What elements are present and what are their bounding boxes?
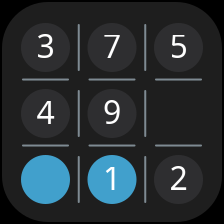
- staticText: 3: [36, 24, 54, 67]
- staticText: 9: [103, 90, 121, 133]
- button[interactable]: 2: [145, 146, 211, 212]
- button[interactable]: Entered digit: [12, 146, 78, 212]
- button[interactable]: 9: [79, 80, 145, 146]
- staticText: 7: [103, 24, 121, 67]
- button[interactable]: 4: [12, 80, 78, 146]
- staticText: 2: [169, 156, 187, 199]
- staticText: 1: [103, 156, 121, 199]
- button[interactable]: 3: [12, 14, 78, 80]
- staticText: 5: [169, 24, 187, 67]
- button[interactable]: 5: [145, 14, 211, 80]
- staticText: 4: [36, 90, 54, 133]
- button[interactable]: 1: [79, 146, 145, 212]
- button[interactable]: 7: [79, 14, 145, 80]
